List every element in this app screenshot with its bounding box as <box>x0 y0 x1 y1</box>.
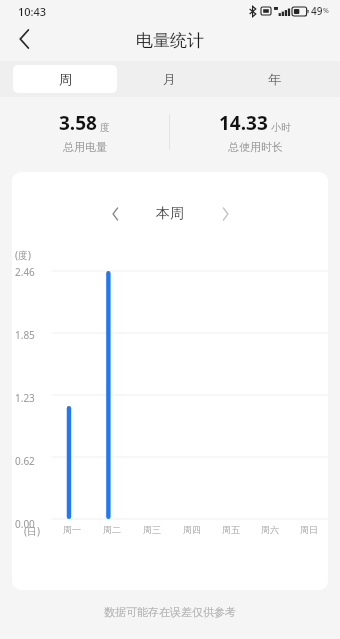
staticText: 月 <box>163 71 176 87</box>
staticText: 本周 <box>156 205 184 223</box>
staticText: 0.00 <box>15 517 35 531</box>
button[interactable]: Previous week <box>100 199 130 229</box>
staticText: 周日 <box>300 524 318 535</box>
staticText: 周二 <box>103 524 121 535</box>
button[interactable]: 月 <box>117 65 222 93</box>
staticText: 1.85 <box>15 328 35 342</box>
button[interactable]: 周 <box>13 65 117 93</box>
staticText: % <box>323 6 329 16</box>
staticText: 周六 <box>261 524 279 535</box>
staticText: (日) <box>24 524 40 538</box>
staticText: 2.46 <box>15 265 35 279</box>
staticText: 周三 <box>143 524 161 535</box>
staticText: 周 <box>59 71 72 87</box>
staticText: 10:43 <box>18 4 47 19</box>
staticText: 周一 <box>63 524 81 535</box>
button[interactable]: Back <box>6 21 42 57</box>
staticText: (度) <box>15 248 31 262</box>
staticText: 14.33 <box>219 110 268 136</box>
button[interactable]: Next week <box>210 199 240 229</box>
staticText: 小时 <box>271 121 291 134</box>
staticText: 年 <box>268 71 281 87</box>
staticText: 49 <box>311 4 323 18</box>
staticText: 度 <box>100 121 110 134</box>
staticText: 0.62 <box>15 454 35 468</box>
staticText: 电量统计 <box>136 30 204 51</box>
staticText: 周四 <box>183 524 201 535</box>
staticText: 总用电量 <box>63 140 107 154</box>
staticText: 3.58 <box>59 110 97 136</box>
staticText: 1.23 <box>15 391 35 405</box>
staticText: 总使用时长 <box>228 140 283 154</box>
staticText: 周五 <box>222 524 240 535</box>
staticText: 数据可能存在误差仅供参考 <box>0 605 340 619</box>
button[interactable]: 年 <box>222 65 327 93</box>
